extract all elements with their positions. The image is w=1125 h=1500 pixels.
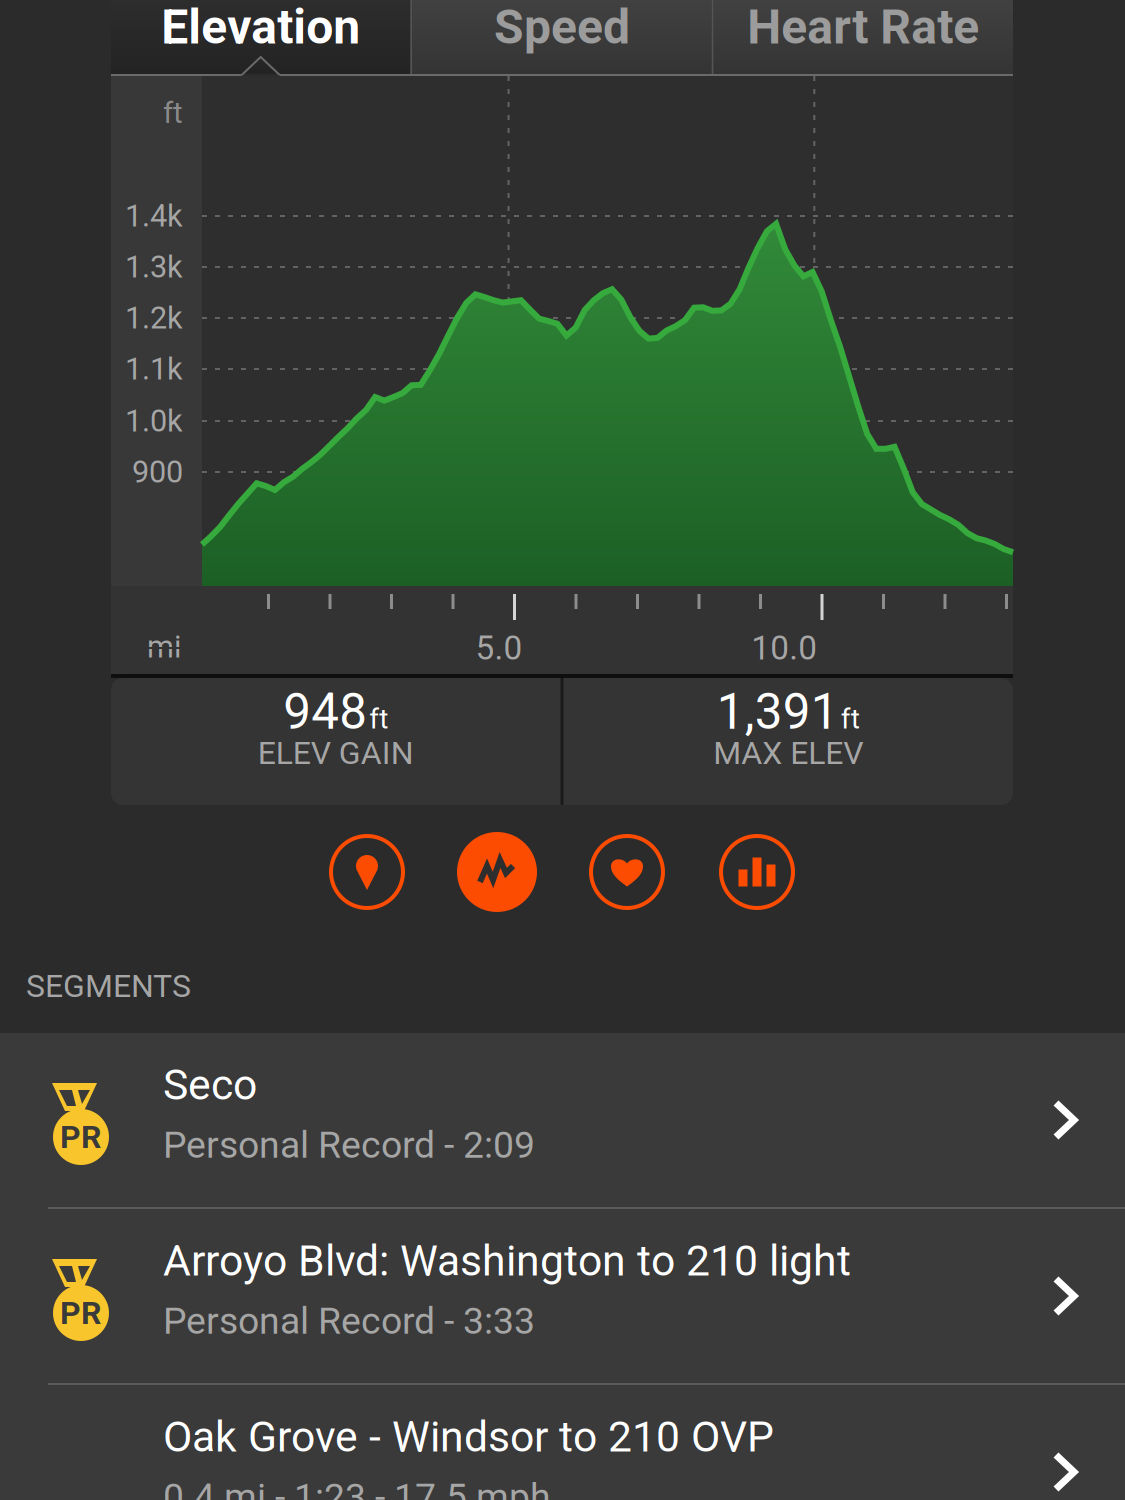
staticText: 1.4k — [125, 202, 183, 230]
button[interactable]: PR — [0, 1033, 1125, 1207]
staticText: 1,391 — [717, 689, 839, 735]
staticText: Oak Grove - Windsor to 210 OVP — [163, 1417, 774, 1457]
button[interactable]: Analysis — [455, 805, 539, 939]
button[interactable]: Oak Grove - Windsor to 210 OVP — [0, 1385, 1125, 1500]
staticText: 900 — [132, 458, 183, 486]
staticText: 0.4 mi - 1:23 - 17.5 mph — [163, 1479, 551, 1500]
button[interactable]: Speed — [412, 0, 712, 74]
staticText: PR — [60, 1122, 102, 1152]
staticText: ft — [841, 706, 860, 732]
staticText: Arroyo Blvd: Washington to 210 light — [163, 1241, 851, 1281]
staticText: 10.0 — [751, 632, 817, 664]
staticText: 1.3k — [125, 253, 183, 281]
staticText: 1.1k — [125, 355, 183, 383]
staticText: Seco — [163, 1065, 257, 1105]
staticText: 1.2k — [125, 304, 183, 332]
staticText: MAX ELEV — [713, 738, 863, 768]
button[interactable]: Heart Rate — [714, 0, 1013, 74]
button[interactable]: PR — [0, 1209, 1125, 1383]
staticText: mi — [147, 633, 181, 661]
staticText: PR — [60, 1298, 102, 1328]
staticText: ft — [163, 99, 183, 127]
staticText: SEGMENTS — [26, 971, 191, 1001]
staticText: 1.0k — [125, 407, 183, 435]
staticText: Elevation — [161, 4, 360, 49]
button[interactable]: Elevation — [111, 0, 410, 74]
staticText: ELEV GAIN — [258, 738, 414, 768]
staticText: Personal Record - 3:33 — [163, 1303, 535, 1338]
staticText: 948 — [283, 689, 367, 735]
staticText: Personal Record - 2:09 — [163, 1127, 535, 1162]
staticText: Speed — [494, 4, 630, 49]
staticText: ft — [369, 706, 388, 732]
staticText: 5.0 — [476, 632, 523, 664]
button[interactable]: Map — [325, 805, 409, 939]
button[interactable]: Splits — [715, 805, 799, 939]
staticText: Heart Rate — [747, 4, 979, 49]
button[interactable]: Heart Rate — [585, 805, 669, 939]
